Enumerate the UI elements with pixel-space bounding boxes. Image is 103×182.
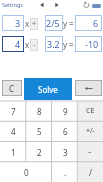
- button[interactable]: -: [30, 39, 38, 51]
- staticText: x: [25, 39, 30, 50]
- staticText: y: [63, 39, 68, 50]
- button[interactable]: [75, 80, 102, 96]
- button[interactable]: 8: [26, 101, 52, 121]
- button[interactable]: –: [77, 142, 103, 162]
- button[interactable]: 3: [52, 142, 78, 162]
- staticText: –: [88, 147, 92, 157]
- button[interactable]: CE: [77, 101, 103, 121]
- staticText: 2/5: [46, 17, 60, 29]
- button[interactable]: 6: [75, 15, 102, 31]
- staticText: 6: [93, 17, 99, 29]
- staticText: /: [89, 167, 92, 178]
- button[interactable]: Settings: [2, 1, 23, 8]
- staticText: x: [25, 18, 30, 29]
- button[interactable]: /: [77, 162, 103, 182]
- staticText: 2: [37, 147, 42, 158]
- staticText: y: [63, 18, 68, 29]
- button[interactable]: 2: [26, 142, 52, 162]
- staticText: -10: [85, 38, 99, 50]
- button[interactable]: [54, 1, 60, 9]
- button[interactable]: 7: [0, 101, 26, 121]
- staticText: 1: [11, 147, 16, 158]
- button[interactable]: 3: [2, 15, 24, 31]
- staticText: 4: [11, 126, 16, 137]
- button[interactable]: +: [30, 18, 38, 30]
- button[interactable]: 1: [0, 142, 26, 162]
- button[interactable]: Solve: [24, 78, 72, 100]
- button[interactable]: 4: [2, 36, 24, 52]
- button[interactable]: 2/5: [45, 15, 63, 31]
- button[interactable]: [39, 1, 45, 9]
- staticText: 6: [63, 126, 68, 137]
- staticText: C: [9, 83, 15, 94]
- staticText: =: [69, 18, 74, 29]
- staticText: 4: [15, 38, 21, 50]
- staticText: .: [64, 166, 67, 178]
- staticText: 3: [15, 17, 21, 29]
- staticText: +/-: [86, 126, 95, 136]
- button[interactable]: +/-: [77, 121, 103, 141]
- staticText: 8: [37, 106, 42, 117]
- button[interactable]: 9: [52, 101, 78, 121]
- staticText: -: [33, 40, 36, 50]
- staticText: 3.2: [47, 38, 60, 50]
- staticText: 3: [63, 147, 68, 158]
- button[interactable]: -10: [75, 36, 102, 52]
- button[interactable]: 6: [52, 121, 78, 141]
- button[interactable]: .: [52, 162, 78, 182]
- staticText: 7: [11, 106, 16, 117]
- staticText: =: [69, 39, 74, 50]
- button[interactable]: [83, 1, 90, 9]
- staticText: CE: [86, 106, 95, 116]
- button[interactable]: [92, 4, 101, 8]
- button[interactable]: 5: [26, 121, 52, 141]
- staticText: 5: [37, 126, 42, 137]
- button[interactable]: C: [2, 80, 22, 96]
- button[interactable]: 0: [0, 162, 52, 182]
- staticText: Solve: [38, 84, 58, 95]
- staticText: +: [32, 19, 37, 29]
- button[interactable]: 3.2: [45, 36, 63, 52]
- staticText: 0: [24, 167, 29, 178]
- button[interactable]: 4: [0, 121, 26, 141]
- staticText: 9: [63, 106, 68, 117]
